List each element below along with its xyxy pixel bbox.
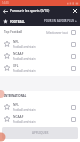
button[interactable]: POUR EN SAVOIR PLUS [44,19,77,23]
button[interactable]: APPLIQUER [2,127,78,139]
staticText: Football américain [13,57,36,61]
button[interactable]: NFL [0,101,80,113]
staticText: NCAAF [13,52,24,56]
button[interactable]: Back [0,6,10,16]
staticText: + [75,19,77,23]
staticText: INTERNATIONAL [4,94,27,98]
button[interactable]: NCAAF [0,113,80,125]
staticText: NFL [13,40,19,44]
staticText: POUR EN SAVOIR PLUS [44,19,74,23]
button[interactable]: FOOTBALL [3,19,25,24]
button[interactable]: NFL [0,38,80,50]
staticText: Top Football [4,30,23,34]
staticText: Sélectionner tout [46,31,68,35]
button[interactable]: Close [70,6,80,16]
button[interactable]: Sélectionner tout [46,30,76,35]
staticText: Football américain [13,108,36,112]
staticText: XFL [13,64,19,68]
staticText: Parcourir les sports (5/10) [10,9,70,13]
staticText: Football américain [13,45,36,49]
staticText: FOOTBALL [10,20,25,24]
button[interactable]: NCAAF [0,50,80,62]
staticText: NFL [13,103,19,107]
staticText: 14:35 [2,1,9,5]
staticText: Football américain [13,69,36,73]
button[interactable]: XFL [0,62,80,74]
staticText: APPLIQUER [32,131,49,135]
staticText: Football américain [13,120,36,124]
staticText: NCAAF [13,115,24,119]
